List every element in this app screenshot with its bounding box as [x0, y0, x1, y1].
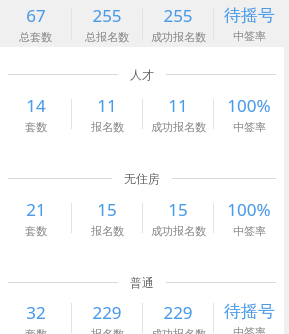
staticText: 255: [92, 4, 122, 27]
staticText: 中签率: [233, 120, 266, 134]
staticText: 32: [26, 301, 46, 324]
staticText: 中签率: [233, 325, 266, 334]
staticText: 成功报名数: [151, 30, 206, 44]
staticText: 成功报名数: [151, 224, 206, 238]
staticText: 套数: [25, 120, 47, 134]
button[interactable]: 100%: [214, 198, 284, 238]
button[interactable]: 21: [0, 198, 71, 238]
button[interactable]: 15: [143, 198, 213, 238]
staticText: 中签率: [233, 29, 266, 43]
button[interactable]: 待摇号: [214, 301, 284, 334]
staticText: 报名数: [91, 224, 124, 238]
staticText: 229: [92, 301, 122, 324]
button[interactable]: 14: [0, 94, 71, 134]
staticText: 总套数: [19, 30, 52, 44]
staticText: 15: [97, 198, 117, 221]
staticText: 255: [163, 4, 193, 27]
staticText: 中签率: [233, 224, 266, 238]
button[interactable]: 255: [72, 4, 142, 44]
staticText: 15: [168, 198, 188, 221]
staticText: 无住房: [124, 171, 160, 186]
staticText: 229: [163, 301, 193, 324]
staticText: 报名数: [91, 120, 124, 134]
button[interactable]: 待摇号: [214, 5, 284, 43]
staticText: 人才: [130, 67, 154, 82]
staticText: 成功报名数: [151, 327, 206, 334]
button[interactable]: 11: [72, 94, 142, 134]
staticText: 67: [26, 4, 46, 27]
staticText: 11: [97, 94, 117, 117]
button[interactable]: 100%: [214, 94, 284, 134]
staticText: 14: [26, 94, 46, 117]
staticText: 套数: [25, 224, 47, 238]
staticText: 总报名数: [85, 30, 129, 44]
staticText: 100%: [227, 94, 271, 117]
staticText: 普通: [130, 275, 154, 290]
button[interactable]: 67: [0, 4, 71, 44]
button[interactable]: 255: [143, 4, 213, 44]
staticText: 报名数: [91, 327, 124, 334]
button[interactable]: 11: [143, 94, 213, 134]
button[interactable]: 15: [72, 198, 142, 238]
staticText: 待摇号: [224, 5, 275, 26]
button[interactable]: 229: [143, 301, 213, 334]
staticText: 11: [168, 94, 188, 117]
staticText: 21: [26, 198, 46, 221]
button[interactable]: 32: [0, 301, 71, 334]
staticText: 100%: [227, 198, 271, 221]
button[interactable]: 229: [72, 301, 142, 334]
staticText: 套数: [25, 327, 47, 334]
staticText: 待摇号: [224, 301, 275, 322]
staticText: 成功报名数: [151, 120, 206, 134]
